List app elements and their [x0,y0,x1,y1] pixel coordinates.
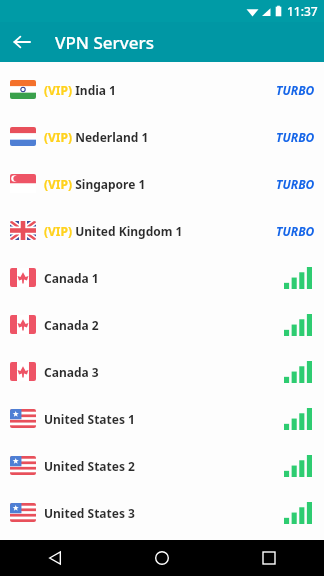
staticText: Canada 3 [44,364,99,380]
button[interactable]: Recent apps [254,543,284,573]
staticText: VPN Servers [55,31,154,54]
staticText: (VIP) India 1 [44,82,116,98]
staticText: TURBO [276,223,315,239]
staticText: United States 3 [44,505,135,521]
button[interactable]: Back [40,543,70,573]
staticText: 11:37 [287,3,318,19]
staticText: TURBO [276,82,315,98]
staticText: United States 2 [44,458,135,474]
button[interactable]: Canada 1 [0,254,324,301]
button[interactable]: Canada 2 [0,301,324,348]
button[interactable]: Canada 3 [0,348,324,395]
button[interactable]: (VIP) United Kingdom 1 [0,207,324,254]
staticText: Canada 1 [44,270,99,286]
button[interactable]: Back [8,28,36,56]
button[interactable]: United States 2 [0,442,324,489]
staticText: TURBO [276,129,315,145]
staticText: (VIP) Nederland 1 [44,129,149,145]
button[interactable]: United States 3 [0,489,324,536]
button[interactable]: (VIP) Nederland 1 [0,113,324,160]
button[interactable]: (VIP) Singapore 1 [0,160,324,207]
staticText: Canada 2 [44,317,99,333]
staticText: (VIP) United Kingdom 1 [44,223,183,239]
staticText: TURBO [276,176,315,192]
button[interactable]: United States 1 [0,395,324,442]
button[interactable]: (VIP) India 1 [0,66,324,113]
staticText: (VIP) Singapore 1 [44,176,146,192]
button[interactable]: Home [147,543,177,573]
staticText: United States 1 [44,411,135,427]
